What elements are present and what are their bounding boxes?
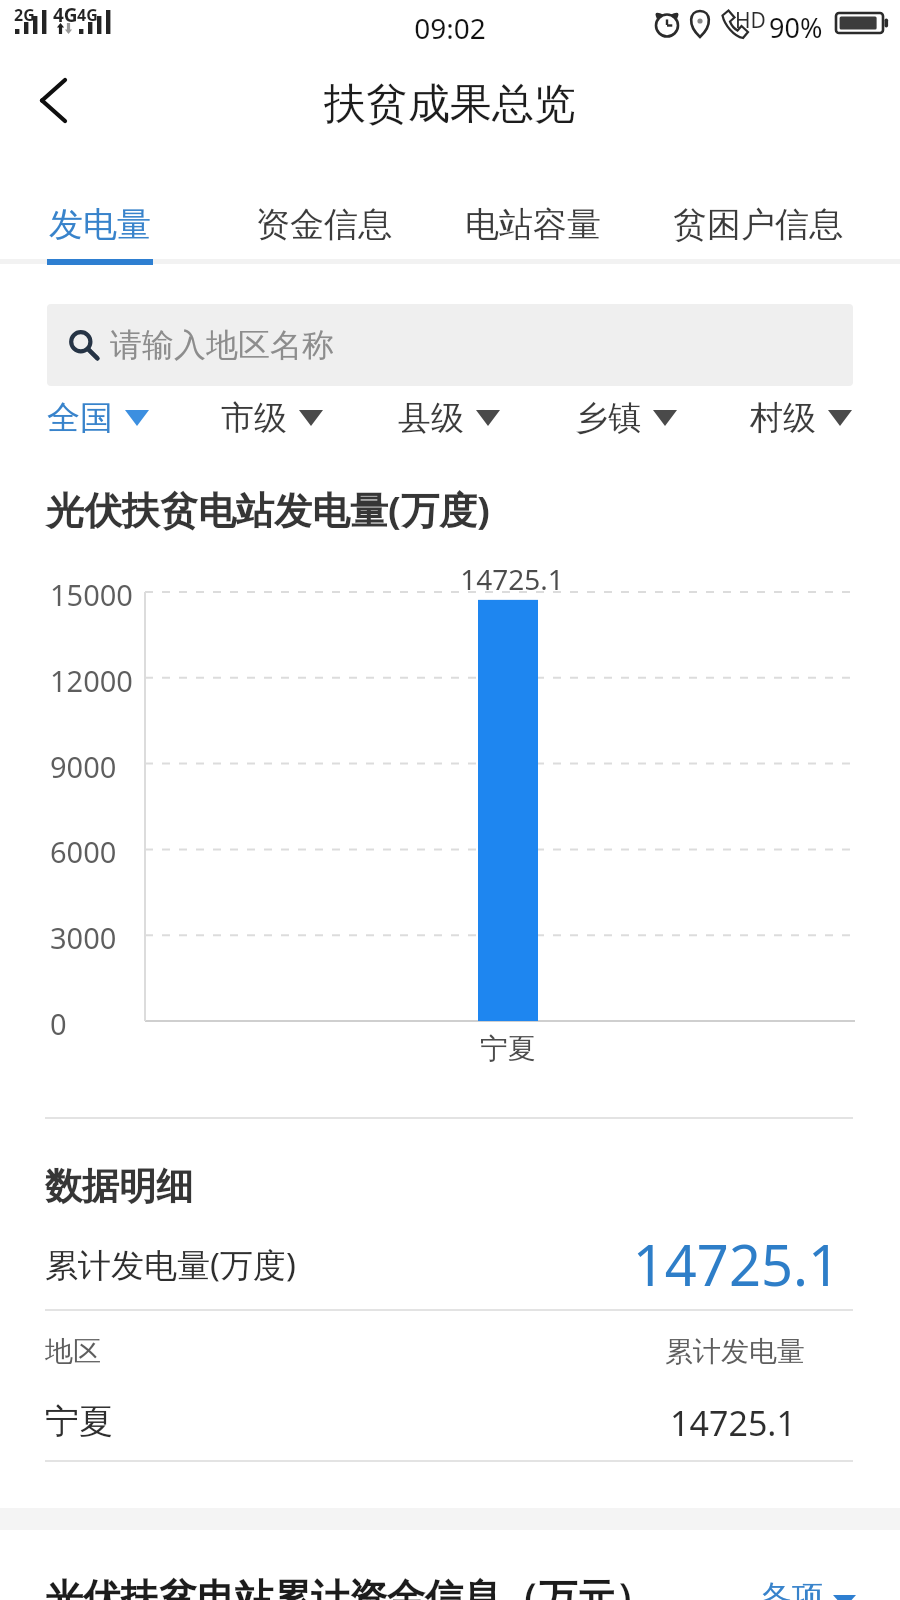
staticText: 电站容量 xyxy=(465,203,601,246)
button[interactable]: 全国 xyxy=(23,393,173,443)
staticText: HD xyxy=(735,6,766,35)
staticText: 请输入地区名称 xyxy=(110,325,334,365)
staticText: 各项 xyxy=(760,1577,824,1600)
staticText: 15000 xyxy=(50,575,133,614)
button[interactable]: 村级 xyxy=(726,393,876,443)
staticText: 地区 xyxy=(45,1334,101,1369)
button[interactable]: Back xyxy=(22,70,84,132)
staticText: 14725.1 xyxy=(412,560,612,598)
button[interactable]: 各项 xyxy=(760,1575,856,1600)
staticText: 4G xyxy=(53,2,78,28)
staticText: 宁夏 xyxy=(408,1031,608,1066)
staticText: 光伏扶贫电站累计资金信息（万元） xyxy=(45,1574,653,1600)
staticText: 资金信息 xyxy=(256,203,392,246)
staticText: 数据明细 xyxy=(45,1163,193,1210)
button[interactable]: 贫困户信息 xyxy=(648,184,868,264)
staticText: 14725.1 xyxy=(633,1400,833,1446)
button[interactable]: 市级 xyxy=(197,393,347,443)
staticText: 扶贫成果总览 xyxy=(0,78,900,131)
button[interactable]: 电站容量 xyxy=(443,184,623,264)
staticText: 0 xyxy=(50,1004,67,1043)
staticText: 光伏扶贫电站发电量(万度) xyxy=(46,483,490,535)
staticText: 县级 xyxy=(398,397,464,439)
button[interactable]: 县级 xyxy=(374,393,524,443)
staticText: 09:02 xyxy=(0,9,900,47)
staticText: 3000 xyxy=(50,918,117,957)
staticText: 发电量 xyxy=(49,203,151,246)
staticText: 4G xyxy=(77,4,98,26)
staticText: 累计发电量(万度) xyxy=(45,1242,296,1287)
staticText: 村级 xyxy=(750,397,816,439)
staticText: 2G xyxy=(14,4,35,26)
staticText: 贫困户信息 xyxy=(673,203,843,246)
staticText: 累计发电量 xyxy=(635,1334,835,1369)
staticText: 市级 xyxy=(221,397,287,439)
staticText: 乡镇 xyxy=(575,397,641,439)
button[interactable]: 请输入地区名称 xyxy=(47,304,853,386)
button[interactable]: 发电量 xyxy=(30,184,170,264)
staticText: 12000 xyxy=(50,661,133,700)
staticText: 14725.1 xyxy=(540,1226,840,1302)
button[interactable]: 资金信息 xyxy=(234,184,414,264)
staticText: 6000 xyxy=(50,832,117,871)
staticText: 全国 xyxy=(47,397,113,439)
staticText: 宁夏 xyxy=(45,1400,113,1443)
staticText: 9000 xyxy=(50,747,117,786)
button[interactable]: 乡镇 xyxy=(551,393,701,443)
staticText: 90% xyxy=(769,9,823,46)
